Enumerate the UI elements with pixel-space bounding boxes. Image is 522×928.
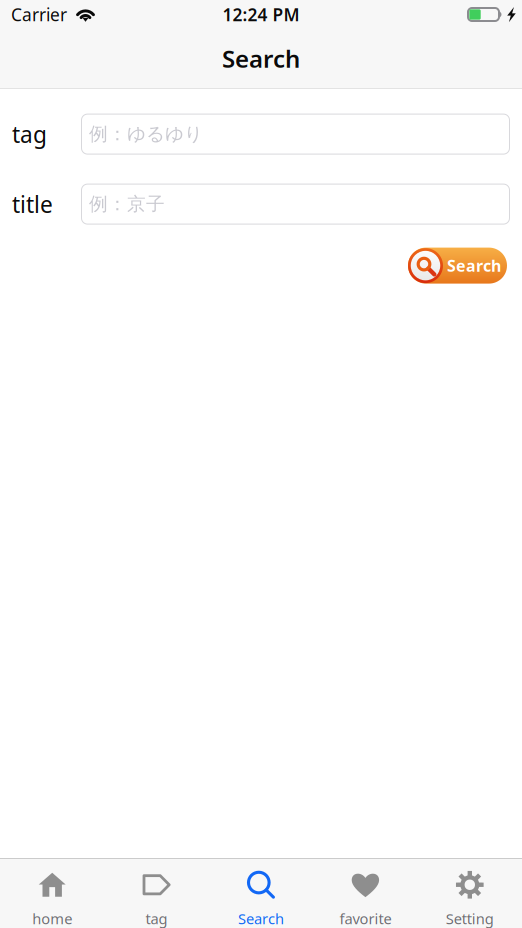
button[interactable]: home — [0, 859, 104, 928]
staticText: Search — [222, 43, 300, 74]
staticText: Setting — [446, 909, 494, 928]
staticText: Carrier — [11, 3, 67, 26]
staticText: title — [12, 189, 53, 219]
button[interactable]: tag — [104, 859, 209, 928]
staticText: Search — [238, 909, 284, 928]
button[interactable]: Search — [408, 248, 507, 284]
button[interactable]: favorite — [313, 859, 418, 928]
staticText: 12:24 PM — [222, 3, 299, 26]
staticText: tag — [12, 119, 47, 149]
staticText: favorite — [339, 909, 391, 928]
button[interactable]: Search — [209, 859, 313, 928]
staticText: home — [32, 909, 72, 928]
staticText: 例：ゆるゆり — [89, 123, 203, 145]
button[interactable]: Setting — [418, 859, 522, 928]
staticText: 例：京子 — [89, 193, 165, 215]
staticText: tag — [146, 909, 168, 928]
staticText: Search — [447, 255, 501, 276]
